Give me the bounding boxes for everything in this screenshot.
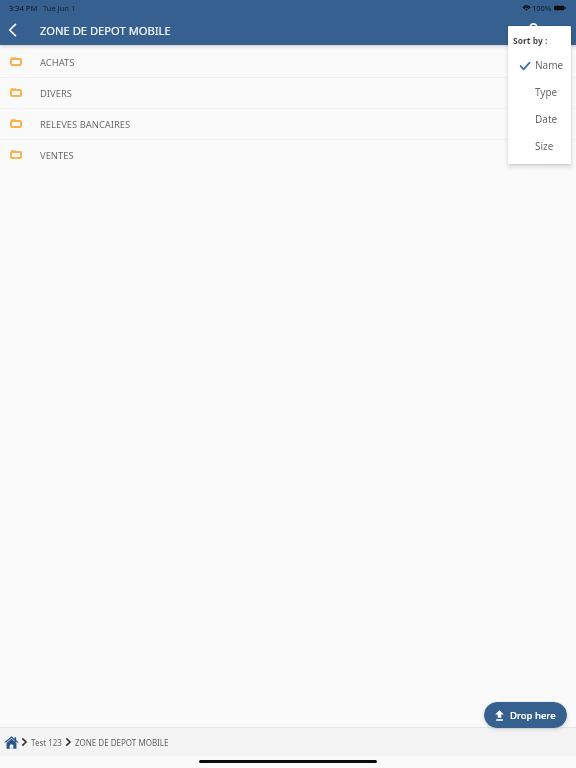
button[interactable]: Size xyxy=(508,132,571,159)
button[interactable]: Date xyxy=(508,105,571,132)
staticText: Name xyxy=(535,58,564,72)
button[interactable]: DIVERS xyxy=(0,78,576,108)
staticText: Sort by : xyxy=(513,35,548,47)
staticText: 100% xyxy=(532,3,552,13)
staticText: 3:34 PM xyxy=(9,3,38,13)
button[interactable]: VENTES xyxy=(0,140,576,170)
staticText: ZONE DE DEPOT MOBILE xyxy=(75,737,169,748)
button[interactable]: Name xyxy=(508,51,571,78)
staticText: DIVERS xyxy=(40,87,72,100)
button[interactable]: ACHATS xyxy=(0,47,576,77)
button[interactable]: Home xyxy=(4,736,19,749)
staticText: RELEVES BANCAIRES xyxy=(40,118,131,131)
button[interactable]: Search xyxy=(520,16,549,45)
staticText: Type xyxy=(535,85,558,99)
staticText: Tue Jun 1 xyxy=(43,3,76,13)
staticText: Date xyxy=(535,112,558,126)
staticText: ZONE DE DEPOT MOBILE xyxy=(40,23,171,38)
button[interactable]: Type xyxy=(508,78,571,105)
staticText: Drop here xyxy=(510,709,556,722)
staticText: Test 123 xyxy=(31,737,62,748)
staticText: Size xyxy=(535,139,554,153)
staticText: ACHATS xyxy=(40,56,75,69)
staticText: VENTES xyxy=(40,149,74,162)
button[interactable]: RELEVES BANCAIRES xyxy=(0,109,576,139)
button[interactable]: Drop here xyxy=(484,702,567,728)
button[interactable]: Back xyxy=(0,18,25,43)
